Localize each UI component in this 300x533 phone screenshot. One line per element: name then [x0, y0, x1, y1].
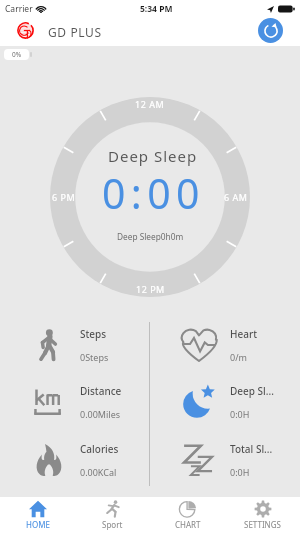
staticText: 12 PM [136, 283, 165, 295]
button[interactable]: Distance [0, 373, 150, 431]
staticText: 0.00KCal [80, 466, 117, 478]
button[interactable]: CHART [150, 497, 225, 533]
button[interactable]: HOME [0, 497, 75, 533]
button[interactable]: Deep Sl... [150, 373, 300, 431]
staticText: 0:0H [230, 408, 250, 420]
staticText: HOME [26, 519, 50, 530]
staticText: SETTINGS [244, 519, 281, 530]
staticText: 0Steps [80, 351, 109, 363]
button[interactable]: Heart [150, 316, 300, 373]
staticText: Deep Sl... [230, 384, 274, 398]
staticText: Distance [80, 384, 122, 398]
button[interactable]: Steps [0, 316, 150, 373]
staticText: 0:0H [230, 466, 250, 478]
button[interactable]: Total Sl... [150, 431, 300, 489]
staticText: Calories [80, 442, 119, 456]
staticText: Heart [230, 327, 257, 341]
staticText: 6 PM [52, 191, 76, 203]
staticText: Deep Sleep [108, 146, 198, 166]
staticText: 0/m [230, 351, 247, 363]
staticText: Sport [102, 519, 123, 530]
staticText: CHART [175, 519, 201, 530]
staticText: Total Sl... [230, 442, 273, 456]
staticText: 5:34 PM [140, 3, 173, 15]
staticText: Steps [80, 327, 107, 341]
staticText: 0:00 [102, 165, 205, 221]
staticText: Carrier [5, 3, 33, 15]
button[interactable]: Sport [75, 497, 150, 533]
button[interactable]: Calories [0, 431, 150, 489]
staticText: 0% [12, 50, 22, 59]
staticText: GD PLUS [48, 24, 102, 40]
staticText: 12 AM [135, 98, 165, 110]
staticText: 0.00Miles [80, 408, 121, 420]
staticText: 6 AM [224, 191, 248, 203]
staticText: Deep Sleep0h0m [117, 231, 184, 242]
button[interactable]: Refresh [258, 18, 283, 43]
button[interactable]: SETTINGS [225, 497, 300, 533]
